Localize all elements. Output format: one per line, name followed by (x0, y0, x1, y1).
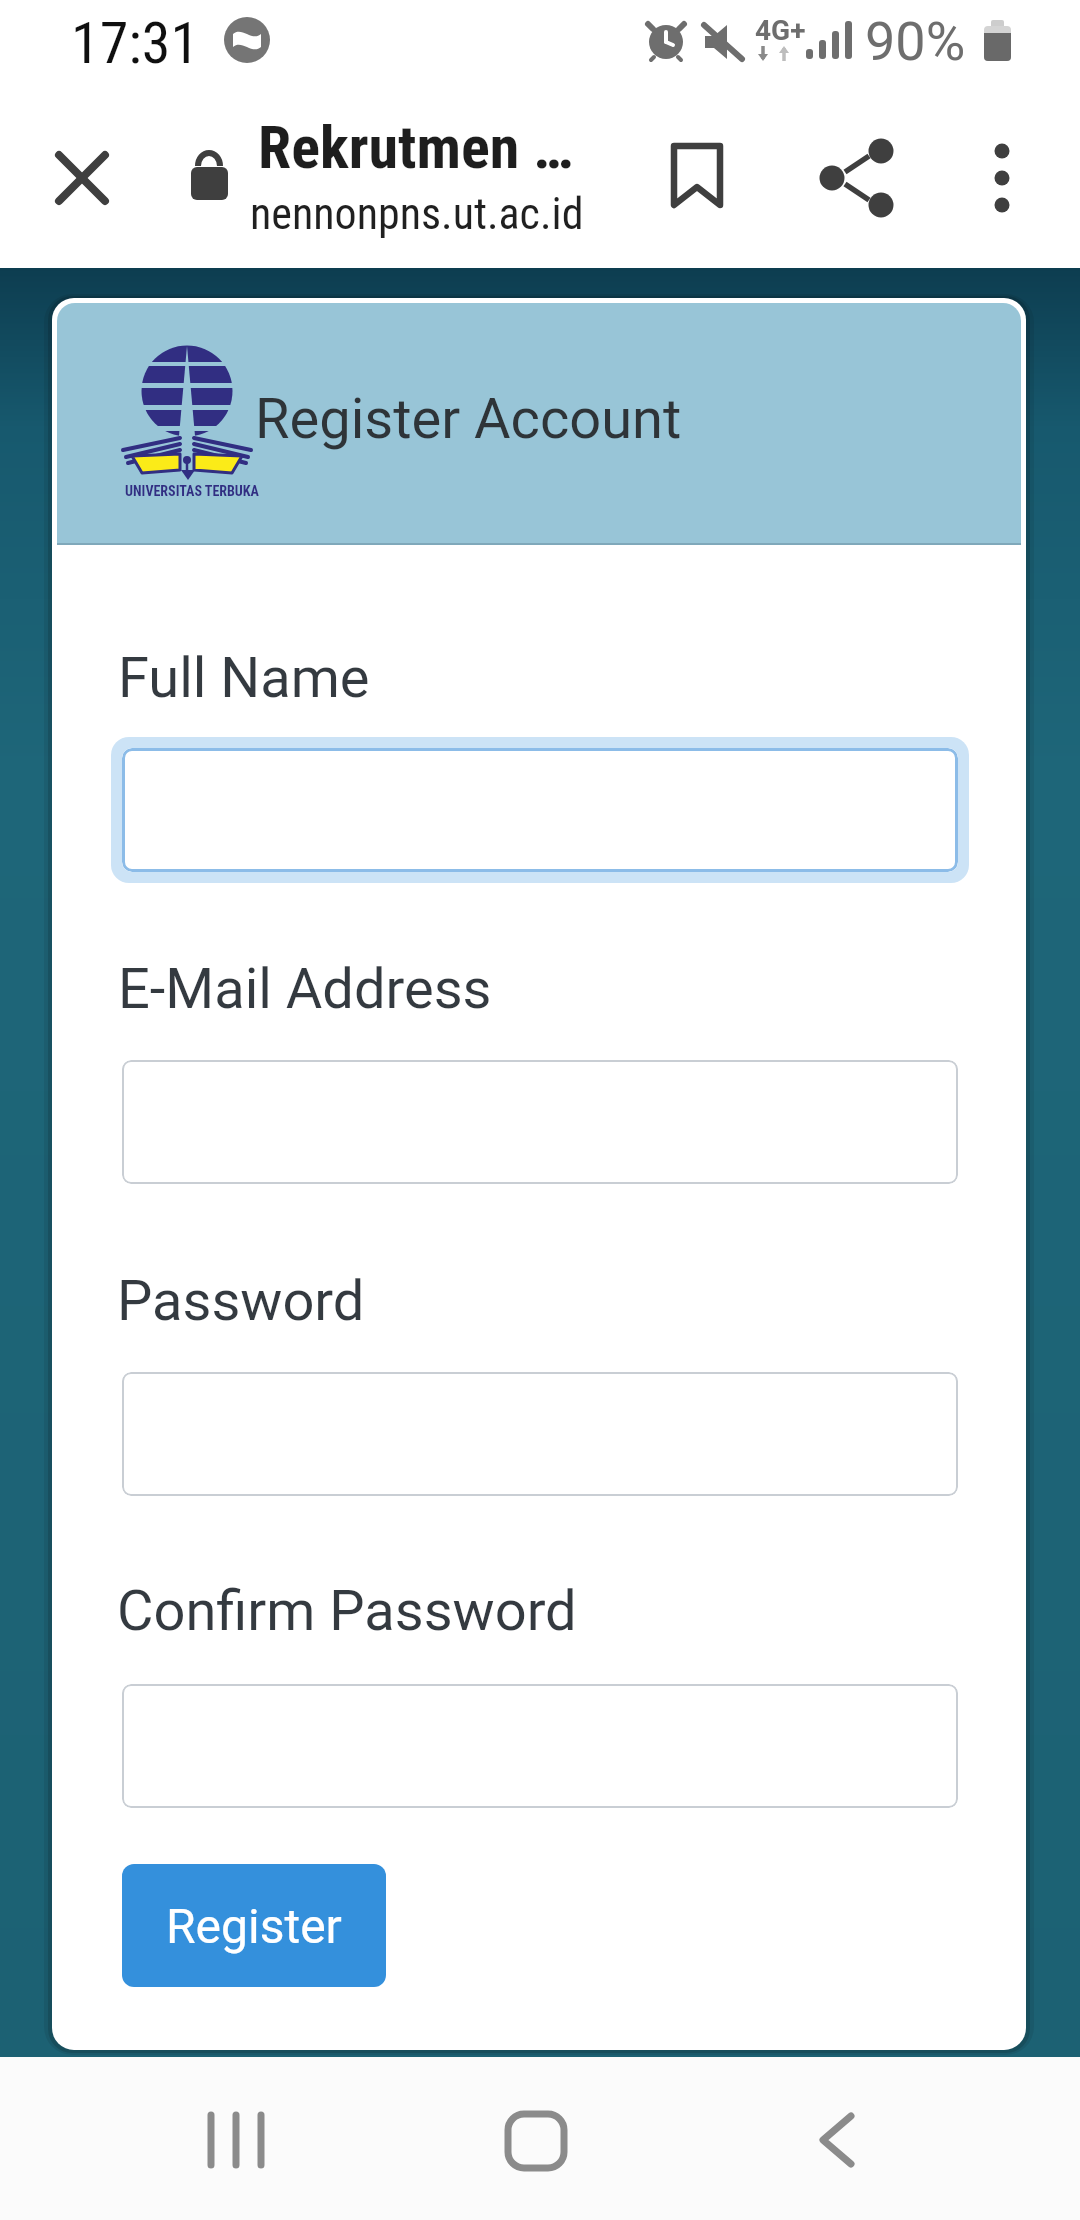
staticText: Password (117, 1268, 365, 1334)
button[interactable] (660, 136, 736, 212)
button[interactable] (810, 140, 906, 216)
staticText: Rekrutmen … (258, 112, 573, 182)
staticText: nennonpns.ut.ac.id (250, 188, 584, 240)
button[interactable] (122, 1684, 958, 1808)
button[interactable] (480, 2090, 590, 2190)
button[interactable] (122, 748, 958, 872)
staticText: 90% (865, 10, 966, 73)
button[interactable] (122, 1060, 958, 1184)
staticText: Register (166, 1898, 342, 1954)
button[interactable]: Register (122, 1864, 386, 1987)
button[interactable] (180, 2090, 290, 2190)
button[interactable] (44, 140, 120, 216)
staticText: 17:31 (71, 9, 200, 77)
staticText: UNIVERSITAS TERBUKA (125, 483, 259, 499)
staticText: 4G+ (755, 14, 806, 47)
staticText: Confirm Password (117, 1578, 577, 1644)
button[interactable] (122, 1372, 958, 1496)
staticText: E-Mail Address (118, 956, 492, 1022)
staticText: Full Name (118, 645, 370, 711)
button[interactable] (972, 140, 1032, 216)
staticText: Register Account (255, 386, 682, 452)
button[interactable] (780, 2090, 890, 2190)
